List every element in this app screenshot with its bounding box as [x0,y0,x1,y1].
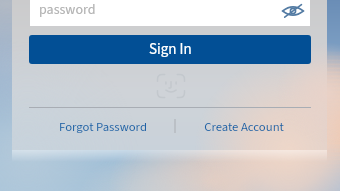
staticText: password [39,0,96,20]
button[interactable]: Sign In [29,35,311,64]
button[interactable]: Face ID [156,73,186,99]
staticText: Forgot Password [59,118,147,136]
button[interactable]: Forgot Password [31,117,174,137]
button[interactable]: Create Account [176,117,311,137]
staticText: Create Account [204,118,284,136]
staticText: Sign In [149,39,192,60]
button[interactable]: Show password [282,4,304,18]
